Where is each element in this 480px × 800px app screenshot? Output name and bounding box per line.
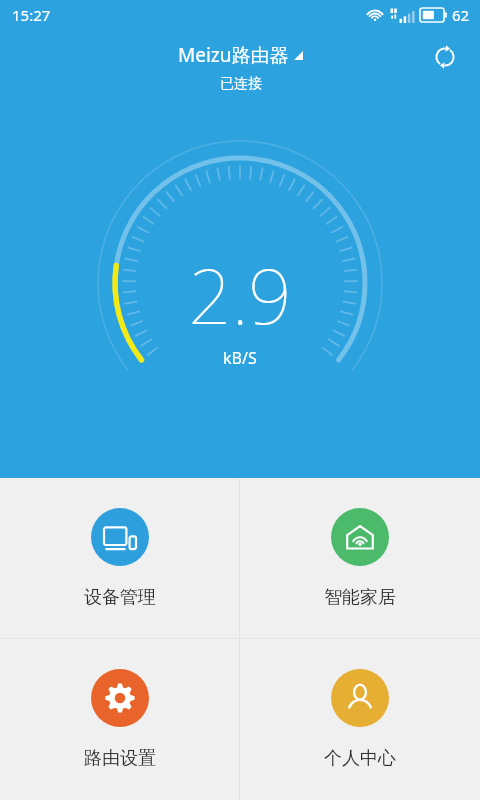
staticText: Meizu路由器 — [178, 42, 289, 68]
staticText: 2.9 — [188, 243, 292, 347]
staticText: 设备管理 — [84, 586, 156, 609]
staticText: kB/S — [223, 347, 257, 369]
staticText: 智能家居 — [324, 586, 396, 609]
staticText: 已连接 — [220, 75, 262, 93]
staticText: 路由设置 — [84, 747, 156, 770]
staticText: 15:27 — [12, 5, 51, 25]
staticText: 62 — [452, 5, 470, 25]
button[interactable]: 设备管理 — [0, 478, 239, 638]
button[interactable]: 路由设置 — [0, 639, 239, 800]
button[interactable]: Meizu路由器 — [170, 40, 311, 70]
button[interactable]: 个人中心 — [240, 639, 480, 800]
button[interactable]: 智能家居 — [240, 478, 480, 638]
button[interactable]: Refresh — [428, 40, 462, 74]
staticText: 个人中心 — [324, 747, 396, 770]
